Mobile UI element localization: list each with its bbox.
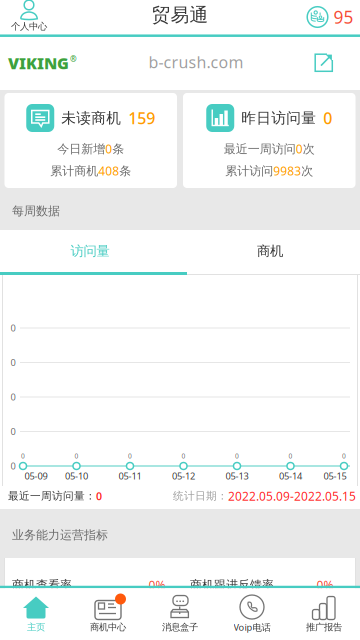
staticText: 主页	[27, 621, 45, 633]
staticText: 2022.05.09-2022.05.15	[228, 488, 356, 504]
staticText: 408	[98, 163, 119, 179]
staticText: VIKING	[8, 52, 69, 74]
staticText: 贸易通	[151, 3, 208, 26]
staticText: ®	[70, 54, 77, 64]
button[interactable]: 商机	[180, 231, 360, 271]
staticText: Voip电话	[233, 621, 270, 633]
staticText: 0	[10, 425, 15, 438]
staticText: 推广报告	[306, 621, 342, 633]
staticText: b-crush.com	[148, 51, 243, 73]
staticText: 0	[288, 452, 292, 460]
staticText: 业务能力运营指标	[12, 528, 108, 542]
staticText: 累计访问	[225, 163, 273, 178]
staticText: 0	[342, 452, 346, 460]
button[interactable]: 未读商机	[4, 93, 177, 188]
staticText: 0	[10, 356, 15, 369]
button[interactable]: 主页	[0, 588, 72, 640]
staticText: 0	[21, 452, 25, 460]
staticText: 未读商机	[61, 109, 121, 127]
staticText: 累计商机	[50, 163, 98, 178]
staticText: 05-09	[24, 470, 47, 482]
staticText: 商机查看率	[12, 578, 72, 592]
staticText: 9983	[273, 163, 301, 179]
staticText: 05-15	[323, 470, 346, 482]
staticText: 0	[105, 141, 112, 157]
staticText: 159	[128, 107, 155, 129]
staticText: 0	[235, 452, 239, 460]
staticText: 条	[112, 142, 124, 156]
staticText: 最近一周访问量：	[8, 489, 96, 502]
staticText: 0	[323, 107, 332, 129]
staticText: 今日新增	[57, 142, 105, 156]
staticText: 访问量	[70, 243, 109, 259]
staticText: 商机	[257, 243, 283, 259]
staticText: 0	[296, 141, 303, 157]
staticText: 0%	[316, 577, 333, 593]
staticText: 0	[96, 489, 102, 503]
staticText: 0%	[148, 577, 165, 593]
staticText: 0	[74, 452, 78, 460]
staticText: 05-13	[225, 470, 248, 482]
button[interactable]: 访问量	[0, 231, 180, 271]
staticText: 05-12	[172, 470, 195, 482]
staticText: 95	[333, 5, 353, 28]
button[interactable]: 商机中心	[72, 588, 144, 640]
staticText: 最近一周访问	[224, 142, 296, 156]
staticText: 统计日期：	[173, 489, 228, 502]
staticText: 消息盒子	[162, 621, 198, 633]
staticText: 每周数据	[12, 204, 60, 218]
staticText: 昨日访问量	[241, 109, 316, 127]
staticText: 0	[181, 452, 185, 460]
staticText: 0	[10, 391, 15, 403]
staticText: 0	[10, 322, 15, 334]
button[interactable]: 推广报告	[288, 588, 360, 640]
button[interactable]: Voip电话	[216, 588, 288, 640]
staticText: 05-10	[65, 470, 88, 482]
staticText: 0	[10, 460, 15, 472]
staticText: 05-11	[118, 470, 141, 482]
button[interactable]: 消息盒子	[144, 588, 216, 640]
staticText: 0	[128, 452, 132, 460]
staticText: 次	[301, 163, 313, 178]
button[interactable]: 昨日访问量	[183, 93, 355, 188]
staticText: 商机中心	[90, 621, 126, 633]
staticText: 商机跟进反馈率	[190, 578, 274, 592]
staticText: 条	[119, 163, 131, 178]
button[interactable]: Edit website	[314, 53, 334, 73]
button[interactable]: 个人中心	[11, 0, 47, 32]
button[interactable]: Points	[306, 5, 353, 28]
staticText: 05-14	[279, 470, 302, 482]
staticText: 个人中心	[11, 21, 47, 32]
staticText: 次	[303, 142, 315, 156]
